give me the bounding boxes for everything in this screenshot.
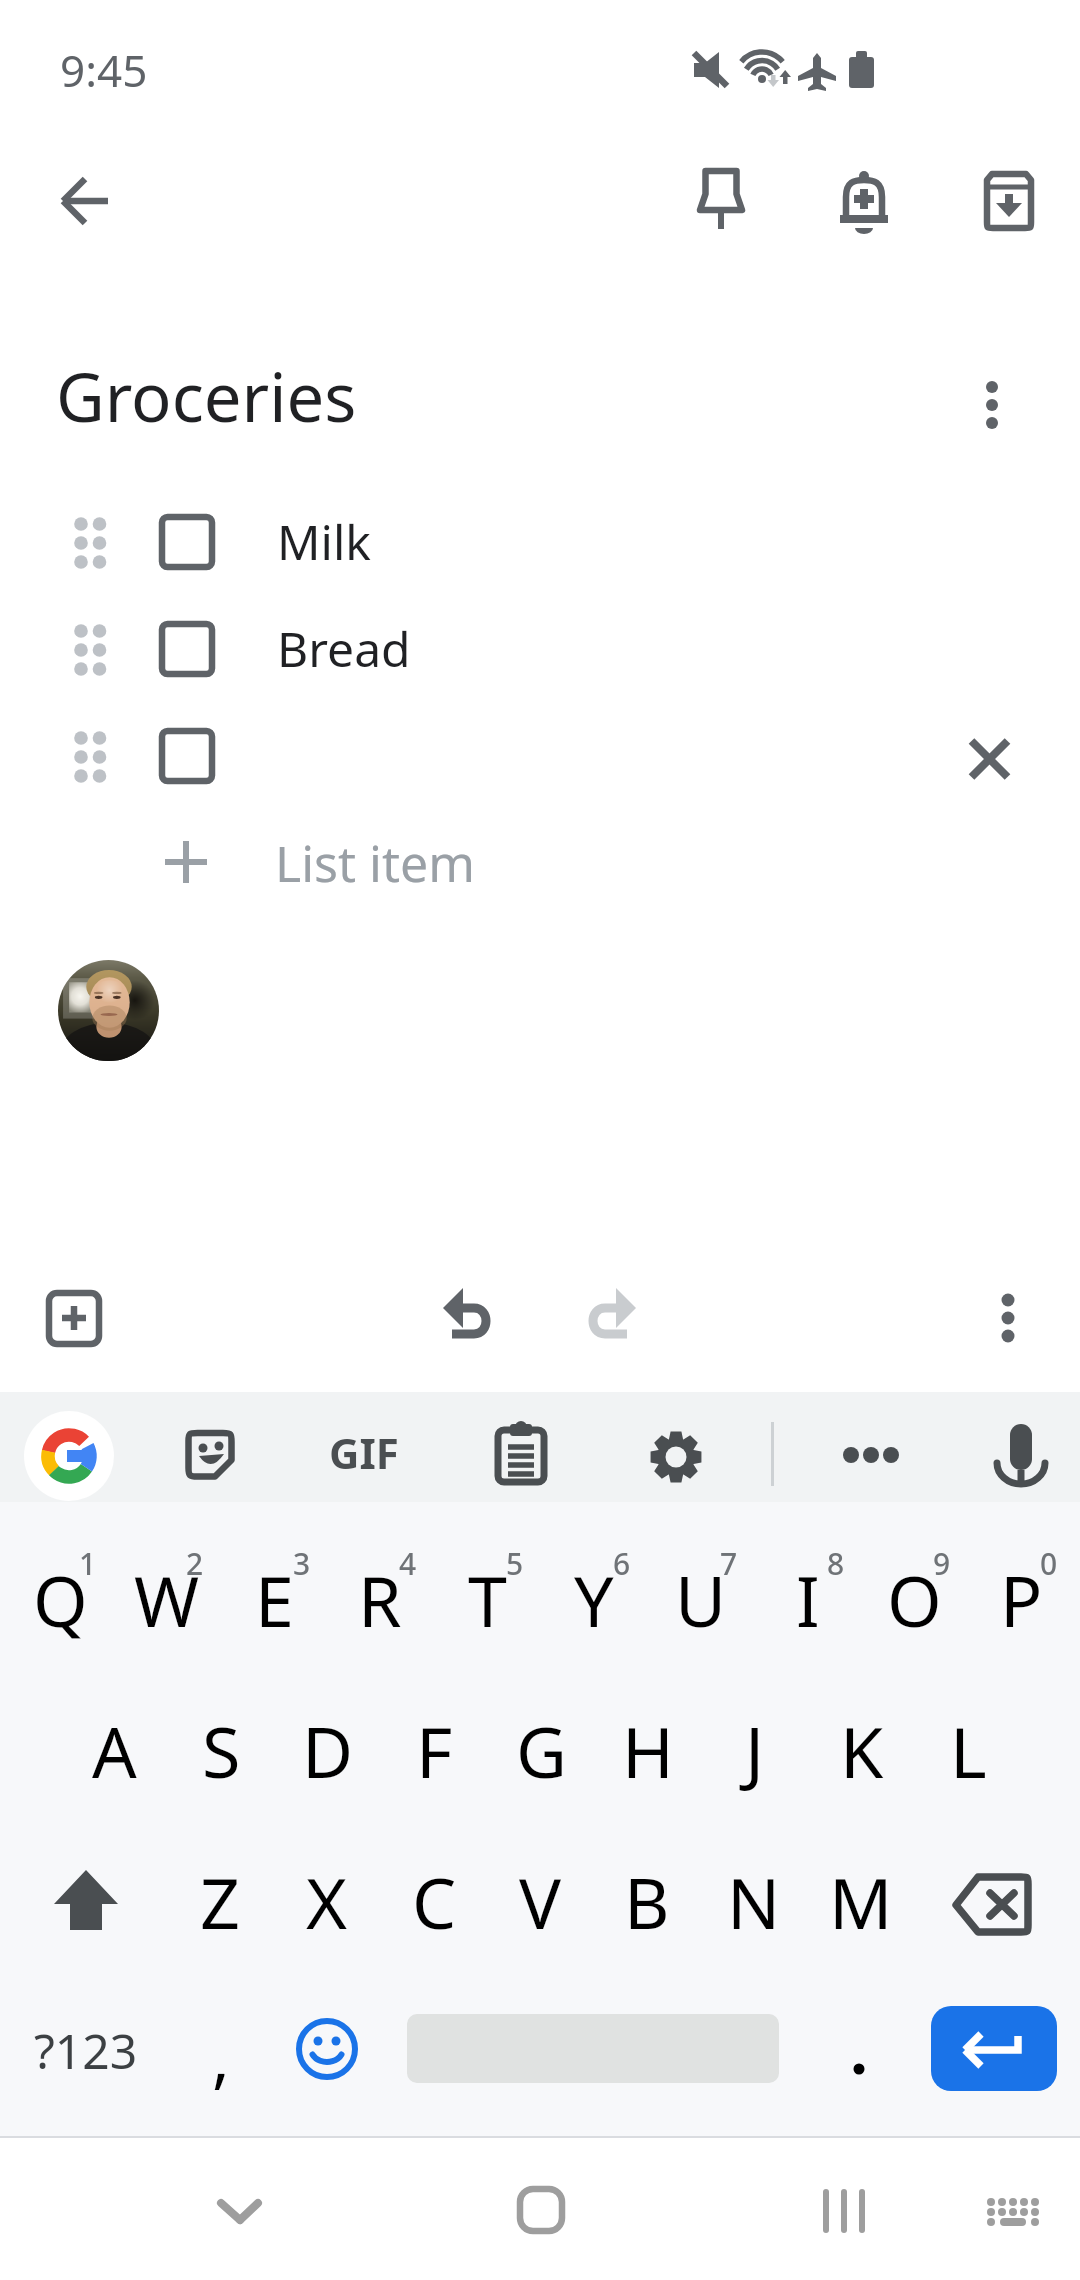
button[interactable]: Collaborator avatar [58,960,159,1061]
staticText: X [306,1854,348,1949]
button[interactable]: D [275,1686,381,1806]
staticText: M [829,1854,893,1949]
button[interactable]: F [381,1686,487,1806]
staticText: E [255,1552,294,1647]
staticText: U [675,1552,727,1647]
staticText: List item [275,829,475,897]
button[interactable]: More options [950,345,1034,465]
button[interactable]: Redo [580,1286,644,1350]
staticText: Q [33,1552,88,1647]
button[interactable]: Delete item [948,716,1034,802]
button[interactable]: Enter [931,2006,1057,2091]
staticText: Milk [277,509,371,574]
button[interactable]: Q [7,1540,113,1680]
button[interactable]: Undo [438,1286,502,1350]
staticText: 7 [720,1543,738,1584]
staticText: Y [574,1552,614,1647]
staticText: K [840,1703,884,1798]
button[interactable]: S [168,1686,274,1806]
staticText: 6 [613,1543,631,1584]
staticText: 3 [293,1543,311,1584]
staticText: G [516,1703,567,1798]
button[interactable]: Recent apps [805,2175,883,2245]
staticText: W [134,1552,200,1647]
staticText: S [202,1703,241,1798]
staticText: , [212,2011,230,2095]
button[interactable]: H [595,1686,701,1806]
staticText: 2 [186,1543,204,1584]
staticText: Z [200,1854,241,1949]
button[interactable]: Home [505,2175,577,2245]
button[interactable]: Archive [963,156,1053,246]
button[interactable]: List item [150,822,570,904]
staticText: C [412,1854,457,1949]
button[interactable]: B [594,1837,700,1957]
staticText: Bread [277,616,411,681]
button[interactable]: GIF [326,1422,402,1482]
button[interactable]: Stickers [185,1430,235,1480]
staticText: L [950,1703,987,1798]
staticText: P [1000,1552,1043,1647]
button[interactable]: Period [820,2012,898,2092]
staticText: A [92,1703,137,1798]
staticText: 5 [506,1543,524,1584]
staticText: Groceries [56,350,357,441]
button[interactable]: Pin note [680,156,770,246]
button[interactable]: Reminder [818,156,908,246]
button[interactable]: Shift [32,1862,140,1942]
button[interactable]: Bread [0,604,1080,694]
button[interactable]: Milk [0,497,1080,587]
button[interactable]: Hide keyboard [200,2176,280,2246]
staticText: 9 [933,1543,951,1584]
button[interactable]: Add [40,1284,110,1354]
button[interactable]: T [434,1540,540,1680]
staticText: F [416,1703,453,1798]
button[interactable]: More options [843,1438,899,1472]
staticText: 4 [399,1543,417,1584]
button[interactable]: A [61,1686,167,1806]
button[interactable]: Backspace [938,1862,1048,1950]
button[interactable]: W [114,1540,220,1680]
button[interactable]: Clipboard [494,1422,548,1486]
button[interactable]: Back [40,156,130,246]
button[interactable]: M [808,1837,914,1957]
button[interactable]: Settings [646,1427,706,1487]
button[interactable]: Groceries [54,348,754,444]
button[interactable]: Y [541,1540,647,1680]
button[interactable]: V [487,1837,593,1957]
button[interactable]: K [809,1686,915,1806]
staticText: N [727,1854,781,1949]
staticText: I [796,1552,820,1647]
staticText: 8 [827,1543,845,1584]
staticText: R [358,1552,402,1647]
button[interactable]: P [968,1540,1074,1680]
button[interactable]: G [488,1686,594,1806]
button[interactable]: Z [167,1837,273,1957]
button[interactable]: I [755,1540,861,1680]
staticText: B [624,1854,670,1949]
button[interactable]: Voice input [994,1420,1048,1492]
button[interactable]: Google search [24,1411,114,1501]
button[interactable]: R [327,1540,433,1680]
button[interactable]: Emoji [296,2018,358,2080]
button[interactable] [0,711,1080,801]
button[interactable]: O [861,1540,967,1680]
button[interactable]: N [701,1837,807,1957]
button[interactable]: U [648,1540,754,1680]
staticText: T [468,1552,507,1647]
staticText: GIF [329,1424,399,1481]
button[interactable]: ?123 [22,2008,150,2092]
button[interactable]: C [381,1837,487,1957]
button[interactable]: E [221,1540,327,1680]
button[interactable]: Change keyboard [980,2182,1042,2234]
staticText: 9:45 [60,40,148,100]
button[interactable]: More options [968,1278,1048,1358]
staticText: 1 [79,1543,97,1584]
button[interactable]: J [702,1686,808,1806]
staticText: H [622,1703,674,1798]
button[interactable]: , [172,2008,268,2092]
staticText: D [302,1703,354,1798]
button[interactable]: L [915,1686,1021,1806]
button[interactable]: X [274,1837,380,1957]
